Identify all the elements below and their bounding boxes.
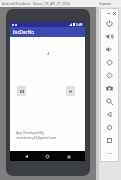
button[interactable]: Increment (17, 86, 26, 96)
button[interactable]: Power (100, 17, 119, 30)
button[interactable]: Zoom (100, 95, 119, 108)
button[interactable]: Rotate left (100, 56, 119, 69)
button[interactable]: Volume down (100, 43, 119, 56)
button[interactable]: Close (112, 11, 116, 15)
button[interactable]: Overview (100, 134, 119, 147)
staticText: Android Emulator - Nexus_5X_API_27_5554 (2, 1, 70, 6)
staticText: 5:49 (76, 23, 83, 27)
staticText: -4 (46, 51, 50, 56)
button[interactable]: Volume up (100, 30, 119, 43)
staticText: IncDecNo (13, 29, 35, 35)
button[interactable]: Take screenshot (100, 82, 119, 95)
button[interactable]: Rotate right (100, 69, 119, 82)
button[interactable]: Home (43, 152, 52, 161)
button[interactable]: Recents (64, 152, 73, 161)
button[interactable]: Back (22, 152, 31, 161)
button[interactable]: Home (100, 121, 119, 134)
button[interactable]: Minimize (106, 11, 110, 15)
staticText: vivekdubey22@gmail.com (16, 135, 57, 139)
button[interactable]: More (100, 147, 119, 160)
staticText: Hiyama (99, 1, 112, 6)
button[interactable]: Back (100, 108, 119, 121)
staticText: App Developed By (16, 130, 45, 134)
button[interactable]: Decrement (66, 86, 75, 96)
